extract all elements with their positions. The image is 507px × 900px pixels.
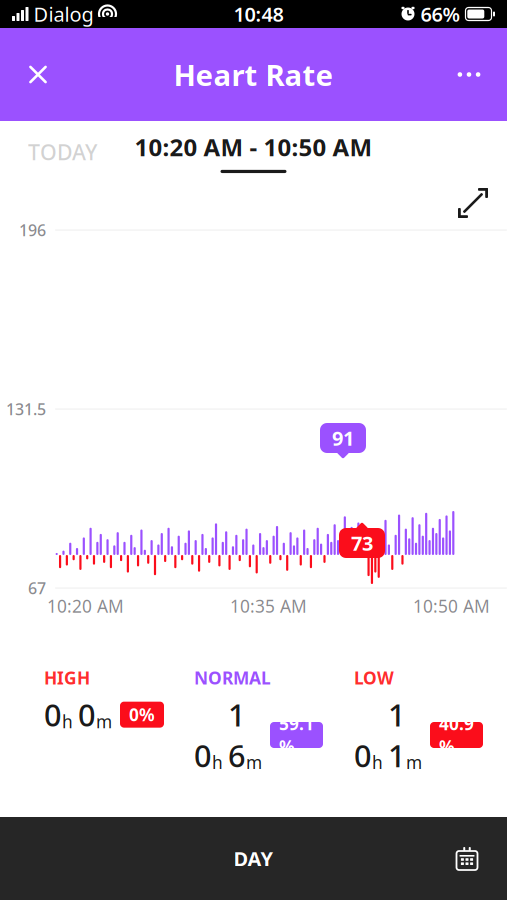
staticText: m <box>406 751 422 774</box>
staticText: 40.9% <box>439 712 474 758</box>
staticText: 10:20 AM - 10:50 AM <box>134 131 372 163</box>
staticText: NORMAL <box>194 666 271 689</box>
staticText: 16 <box>228 694 246 776</box>
staticText: h <box>372 751 383 774</box>
staticText: 0 <box>354 735 372 776</box>
staticText: 196 <box>19 219 46 241</box>
staticText: 66% <box>420 1 460 27</box>
staticText: h <box>62 710 73 733</box>
staticText: m <box>96 710 112 733</box>
staticText: 10:35 AM <box>230 594 307 617</box>
button[interactable]: Expand chart <box>451 183 495 223</box>
staticText: 0% <box>129 703 155 726</box>
staticText: 0 <box>44 694 62 735</box>
staticText: 10:50 AM <box>413 594 490 617</box>
staticText: TODAY <box>28 138 97 166</box>
staticText: 67 <box>28 577 46 599</box>
staticText: 10:20 AM <box>47 594 124 617</box>
staticText: m <box>246 751 262 774</box>
staticText: 73 <box>351 530 373 556</box>
button[interactable]: More options <box>442 47 496 101</box>
button[interactable]: Choose date <box>439 830 495 886</box>
staticText: 59.1% <box>279 712 314 758</box>
staticText: 0 <box>78 694 96 735</box>
button[interactable]: Close <box>11 47 65 101</box>
button[interactable]: 10:20 AM - 10:50 AM <box>134 131 372 173</box>
staticText: DAY <box>233 845 273 872</box>
staticText: HIGH <box>44 666 90 689</box>
staticText: 131.5 <box>6 398 46 420</box>
staticText: Heart Rate <box>173 55 333 94</box>
button[interactable]: DAY <box>193 833 313 883</box>
staticText: Dialog <box>33 1 93 27</box>
staticText: 91 <box>332 425 354 451</box>
staticText: 11 <box>388 694 406 776</box>
staticText: 10:48 <box>233 1 283 27</box>
staticText: h <box>212 751 223 774</box>
staticText: 0 <box>194 735 212 776</box>
staticText: LOW <box>354 666 394 689</box>
